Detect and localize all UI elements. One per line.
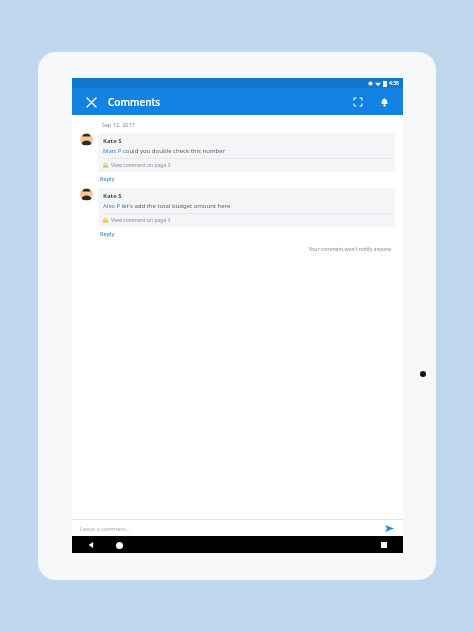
button[interactable]: Kate S [72, 188, 403, 239]
staticText: Your comment won't notify anyone [72, 246, 391, 253]
staticText: Alex P let's add the total budget amount… [103, 202, 231, 210]
button[interactable]: Leave a comment... [72, 520, 403, 536]
button[interactable]: Home [112, 538, 126, 552]
button[interactable]: Notifications [375, 93, 393, 111]
button[interactable]: Close [82, 93, 100, 111]
button[interactable]: Recent apps [377, 538, 391, 552]
button[interactable]: Reply [98, 227, 119, 239]
staticText: Reply [100, 175, 115, 182]
staticText: Reply [100, 230, 115, 237]
staticText: View comment on page 3 [111, 217, 171, 224]
staticText: Kate S [103, 137, 122, 145]
staticText: Leave a comment... [80, 525, 131, 532]
staticText: Matt P could you double check this numbe… [103, 147, 226, 155]
button[interactable]: Fit to screen [349, 93, 367, 111]
staticText: View comment on page 3 [111, 162, 171, 169]
button[interactable]: Back [84, 538, 98, 552]
button[interactable]: Kate S [72, 133, 403, 184]
staticText: 4:36 [389, 80, 399, 87]
staticText: Sep 12, 2017 [102, 121, 135, 128]
staticText: Comments [108, 95, 161, 109]
staticText: Kate S [103, 192, 122, 200]
button[interactable]: Send [383, 522, 395, 534]
button[interactable]: Reply [98, 172, 119, 184]
